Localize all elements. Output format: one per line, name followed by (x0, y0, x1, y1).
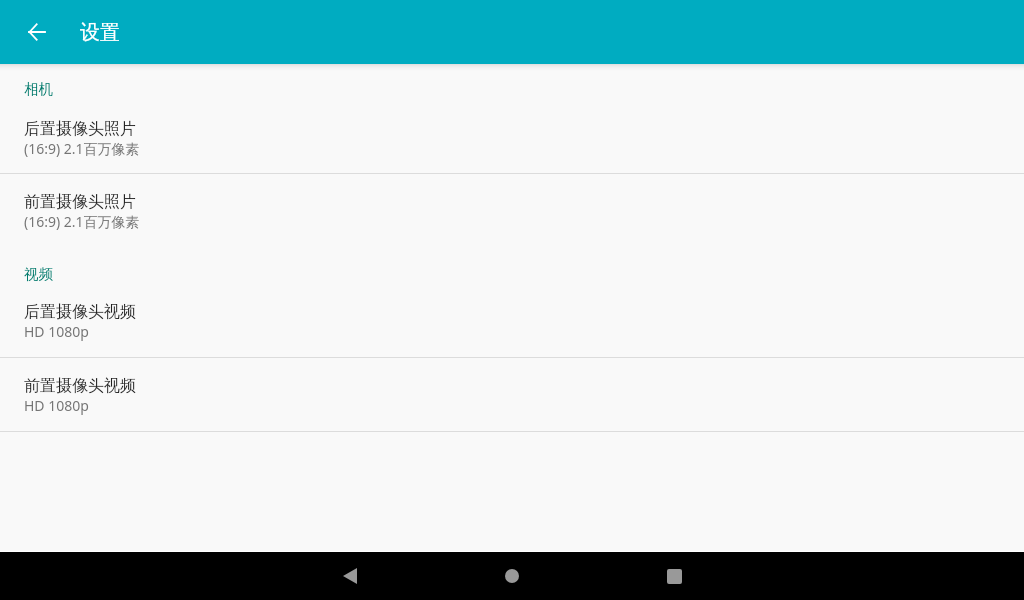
staticText: 前置摄像头视频 (24, 376, 136, 396)
staticText: (16:9) 2.1百万像素 (24, 212, 140, 231)
button[interactable]: Home (488, 552, 536, 600)
button[interactable]: Back (326, 552, 374, 600)
button[interactable]: 后置摄像头视频 (0, 283, 1024, 357)
staticText: HD 1080p (24, 396, 89, 415)
button[interactable]: 前置摄像头视频 (0, 358, 1024, 431)
staticText: 相机 (24, 80, 53, 98)
staticText: (16:9) 2.1百万像素 (24, 139, 140, 158)
staticText: 设置 (80, 20, 120, 45)
button[interactable]: 后置摄像头照片 (0, 98, 1024, 173)
staticText: 后置摄像头照片 (24, 119, 136, 139)
staticText: 前置摄像头照片 (24, 192, 136, 212)
button[interactable]: 前置摄像头照片 (0, 174, 1024, 249)
button[interactable]: Navigate up (12, 8, 60, 56)
staticText: HD 1080p (24, 322, 89, 341)
button[interactable]: Recent apps (650, 552, 698, 600)
staticText: 后置摄像头视频 (24, 302, 136, 322)
staticText: 视频 (24, 265, 53, 283)
